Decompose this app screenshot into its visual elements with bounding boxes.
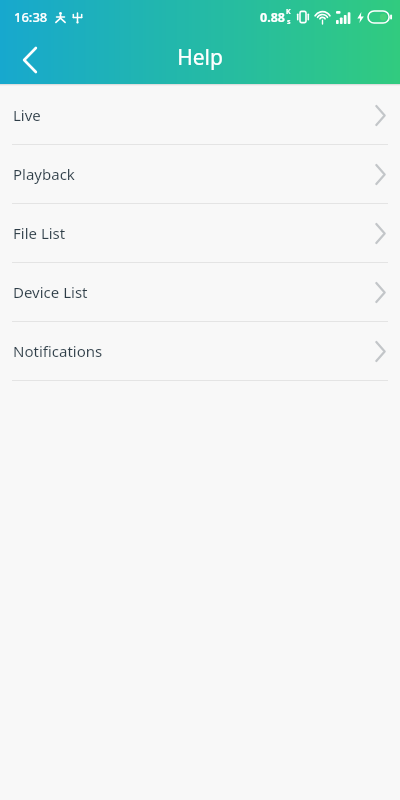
button[interactable]: Back (6, 36, 54, 84)
button[interactable]: Notifications (0, 322, 400, 380)
button[interactable]: Live (0, 86, 400, 144)
staticText: Live (13, 105, 41, 125)
staticText: File List (13, 223, 66, 243)
staticText: Playback (13, 164, 75, 184)
staticText: K (286, 7, 291, 17)
staticText: s (287, 17, 291, 27)
button[interactable]: Playback (0, 145, 400, 203)
staticText: Help (177, 43, 223, 72)
button[interactable]: Device List (0, 263, 400, 321)
button[interactable]: File List (0, 204, 400, 262)
staticText: Device List (13, 282, 88, 302)
staticText: 16:38 (14, 8, 48, 26)
staticText: 0.88 (260, 9, 285, 26)
staticText: Notifications (13, 341, 103, 361)
